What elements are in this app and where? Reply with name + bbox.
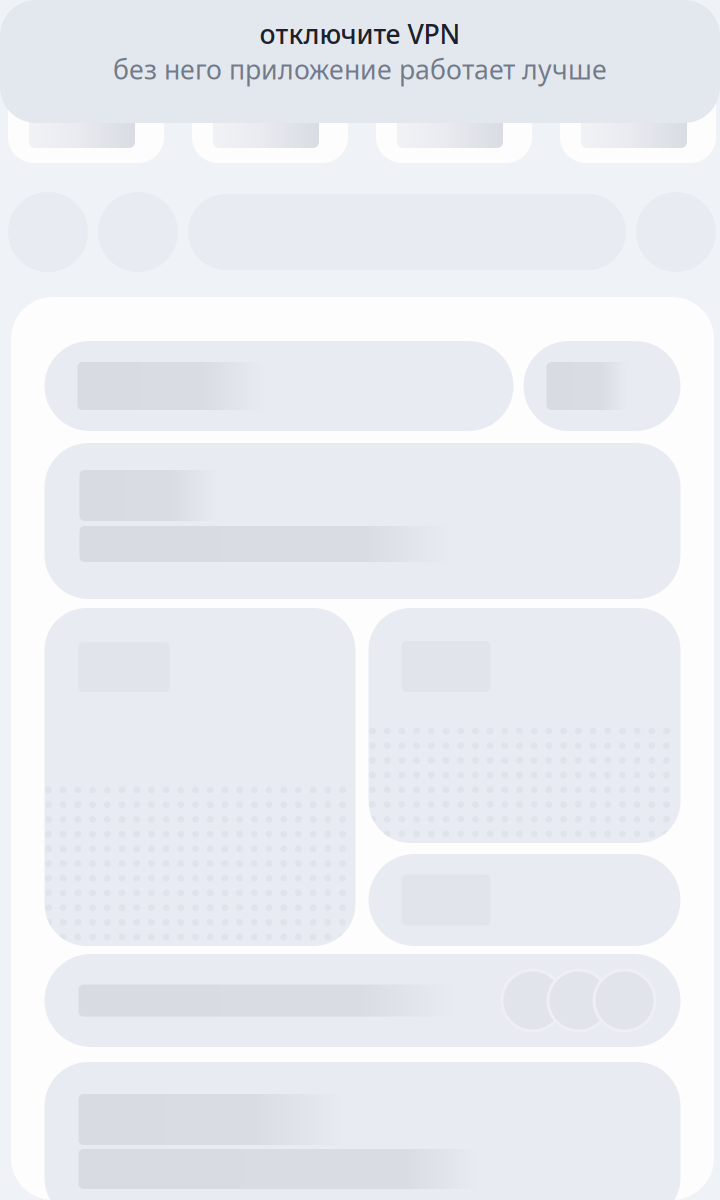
button[interactable]: Story	[192, 63, 348, 163]
staticText: без него приложение работает лучше	[113, 51, 607, 87]
button[interactable]: Story	[560, 63, 716, 163]
button[interactable]: Story	[376, 63, 532, 163]
button[interactable]: Story	[8, 63, 164, 163]
staticText: отключите VPN	[259, 16, 460, 51]
